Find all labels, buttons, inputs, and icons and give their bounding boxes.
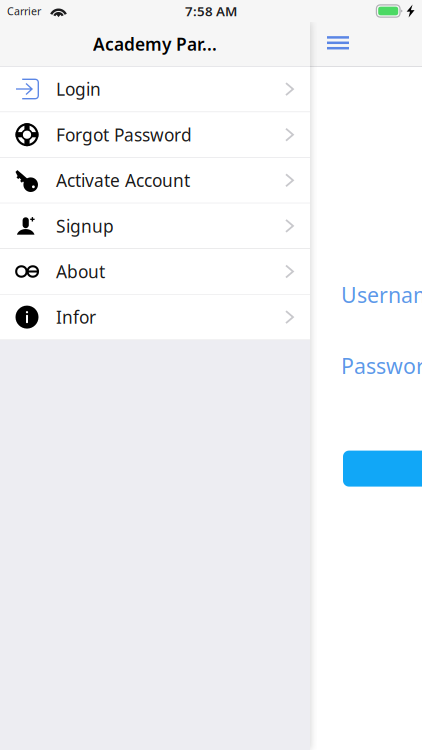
staticText: About — [56, 260, 105, 283]
button[interactable] — [343, 451, 422, 487]
button[interactable]: Menu — [321, 30, 355, 55]
button[interactable]: About — [0, 249, 310, 295]
staticText: Activate Account — [56, 169, 190, 192]
staticText: Password — [341, 351, 422, 380]
staticText: Infor — [56, 306, 96, 329]
button[interactable]: Login — [0, 67, 310, 112]
button[interactable]: Infor — [0, 295, 310, 340]
button[interactable]: Activate Account — [0, 158, 310, 203]
staticText: Username — [341, 280, 422, 309]
button[interactable]: Forgot Password — [0, 112, 310, 158]
staticText: Carrier — [7, 4, 41, 18]
staticText: 7:58 AM — [185, 2, 237, 20]
staticText: Forgot Password — [56, 123, 192, 146]
button[interactable]: Signup — [0, 203, 310, 249]
staticText: Signup — [56, 214, 114, 237]
staticText: Login — [56, 78, 101, 101]
staticText: Academy Par... — [93, 32, 217, 55]
